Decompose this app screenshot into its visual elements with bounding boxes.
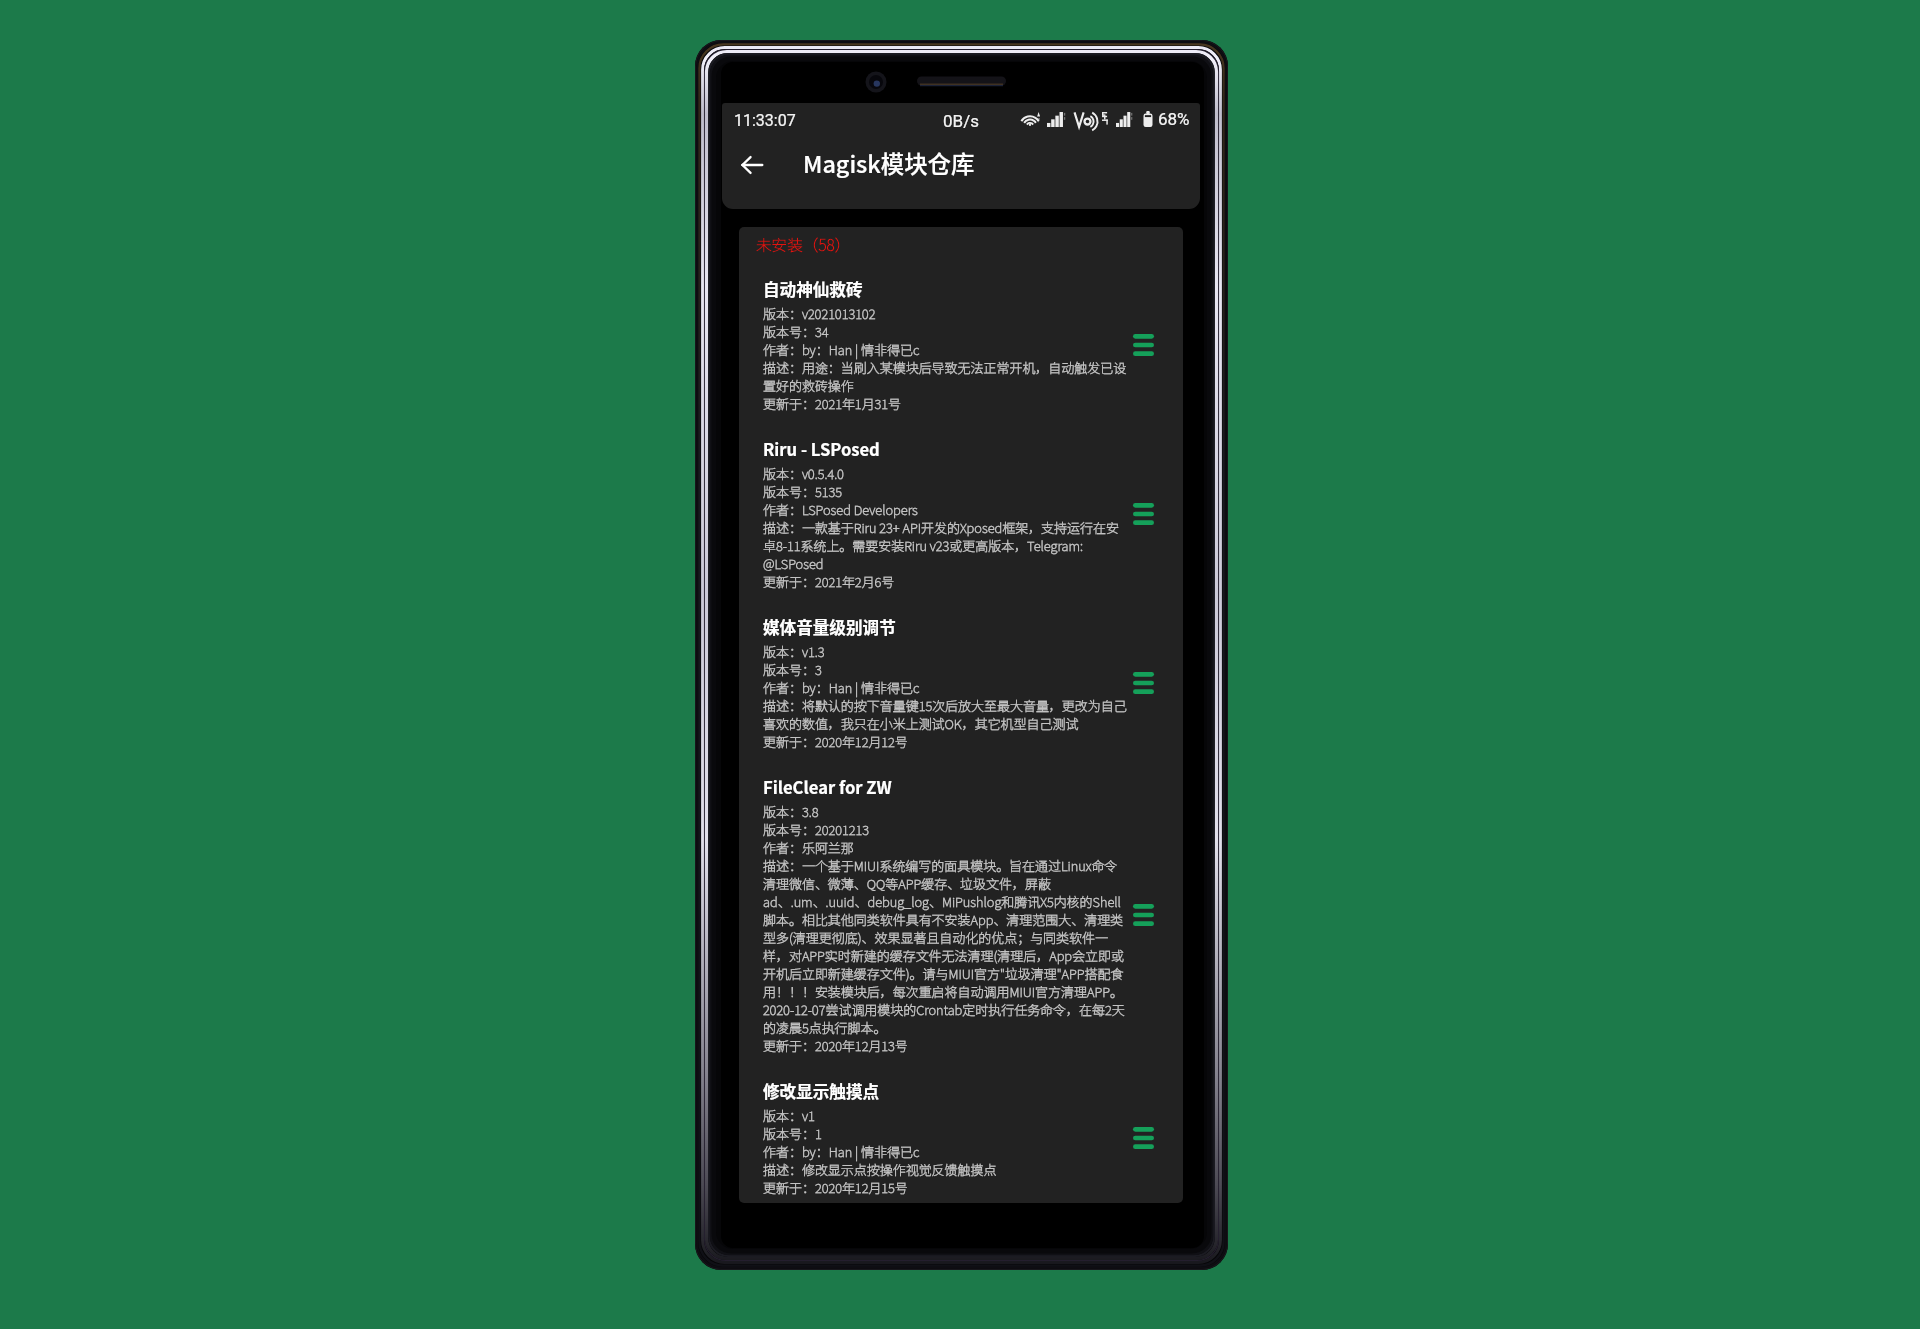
button[interactable]: Riru - LSPosed [739, 438, 1183, 591]
button[interactable]: Back [728, 141, 776, 189]
staticText: 版本：v0.5.4.0 版本号：5135 作者：LSPosed Develope… [763, 465, 1128, 591]
button[interactable]: 模块菜单 [1125, 665, 1161, 701]
button[interactable]: FileClear for ZW [739, 776, 1183, 1055]
staticText: 版本：v1.3 版本号：3 作者：by：Han | 情非得已c 描述：将默认的按… [763, 643, 1128, 751]
staticText: Riru - LSPosed [763, 437, 880, 459]
button[interactable]: 自动神仙救砖 [739, 278, 1183, 413]
staticText: 版本：v2021013102 版本号：34 作者：by：Han | 情非得已c … [763, 305, 1128, 413]
staticText: Magisk模块仓库 [803, 146, 975, 180]
staticText: 自动神仙救砖 [763, 277, 863, 299]
button[interactable]: 模块菜单 [1125, 1120, 1161, 1156]
staticText: 媒体音量级别调节 [763, 615, 896, 637]
staticText: 未安装（58） [756, 233, 851, 256]
staticText: 11:33:07 [734, 111, 796, 130]
button[interactable]: 模块菜单 [1125, 897, 1161, 933]
staticText: 0B/s [943, 111, 979, 131]
staticText: 版本：v1 版本号：1 作者：by：Han | 情非得已c 描述：修改显示点按操… [763, 1107, 997, 1197]
staticText: 版本：3.8 版本号：20201213 作者：乐阿兰那 描述：一个基于MIUI系… [763, 803, 1128, 1055]
button[interactable]: 媒体音量级别调节 [739, 616, 1183, 751]
button[interactable]: 模块菜单 [1125, 327, 1161, 363]
button[interactable]: 模块菜单 [1125, 496, 1161, 532]
button[interactable]: 修改显示触摸点 [739, 1080, 1183, 1197]
staticText: 修改显示触摸点 [763, 1079, 880, 1101]
staticText: FileClear for ZW [763, 775, 892, 797]
staticText: 68% [1158, 109, 1190, 129]
